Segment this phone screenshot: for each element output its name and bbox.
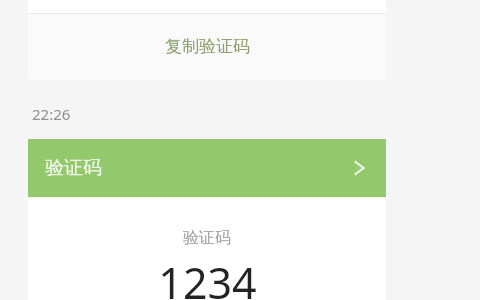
other: Open verification code details bbox=[350, 159, 368, 177]
staticText: 验证码 bbox=[183, 228, 231, 248]
staticText: 1234 bbox=[158, 253, 257, 300]
staticText: 22:26 bbox=[32, 104, 71, 124]
staticText: 复制验证码 bbox=[165, 36, 250, 57]
staticText: 验证码 bbox=[45, 156, 102, 180]
button[interactable]: 验证码 bbox=[28, 139, 386, 197]
button[interactable]: 复制验证码 bbox=[28, 14, 386, 79]
